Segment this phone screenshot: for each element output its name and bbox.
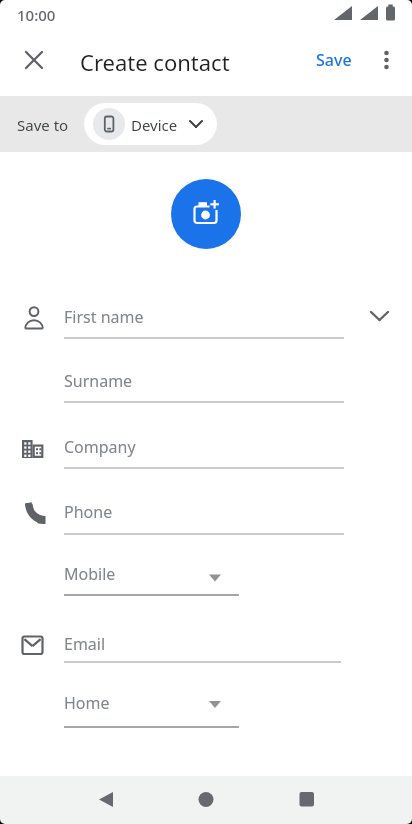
- button[interactable]: [56, 362, 346, 404]
- staticText: Phone: [64, 501, 113, 523]
- staticText: Create contact: [80, 47, 230, 77]
- staticText: Home: [64, 692, 110, 714]
- staticText: Save: [316, 49, 352, 71]
- staticText: Email: [64, 633, 106, 655]
- button[interactable]: [180, 780, 232, 820]
- button[interactable]: [56, 494, 346, 536]
- staticText: Company: [64, 436, 136, 458]
- button[interactable]: [56, 428, 346, 470]
- staticText: Device: [131, 115, 178, 135]
- button[interactable]: [56, 625, 346, 665]
- staticText: Mobile: [64, 563, 116, 585]
- button[interactable]: [374, 46, 400, 74]
- button[interactable]: [80, 780, 132, 820]
- staticText: 10:00: [17, 5, 56, 25]
- button[interactable]: [360, 300, 400, 334]
- button[interactable]: [56, 556, 241, 597]
- button[interactable]: [56, 298, 346, 340]
- button[interactable]: [280, 780, 332, 820]
- button[interactable]: [84, 103, 217, 145]
- staticText: Save to: [17, 115, 69, 135]
- button[interactable]: Save: [306, 46, 362, 74]
- staticText: First name: [64, 306, 144, 328]
- button[interactable]: [56, 688, 241, 729]
- staticText: Surname: [64, 370, 133, 392]
- button[interactable]: [171, 179, 241, 249]
- button[interactable]: [20, 46, 48, 74]
